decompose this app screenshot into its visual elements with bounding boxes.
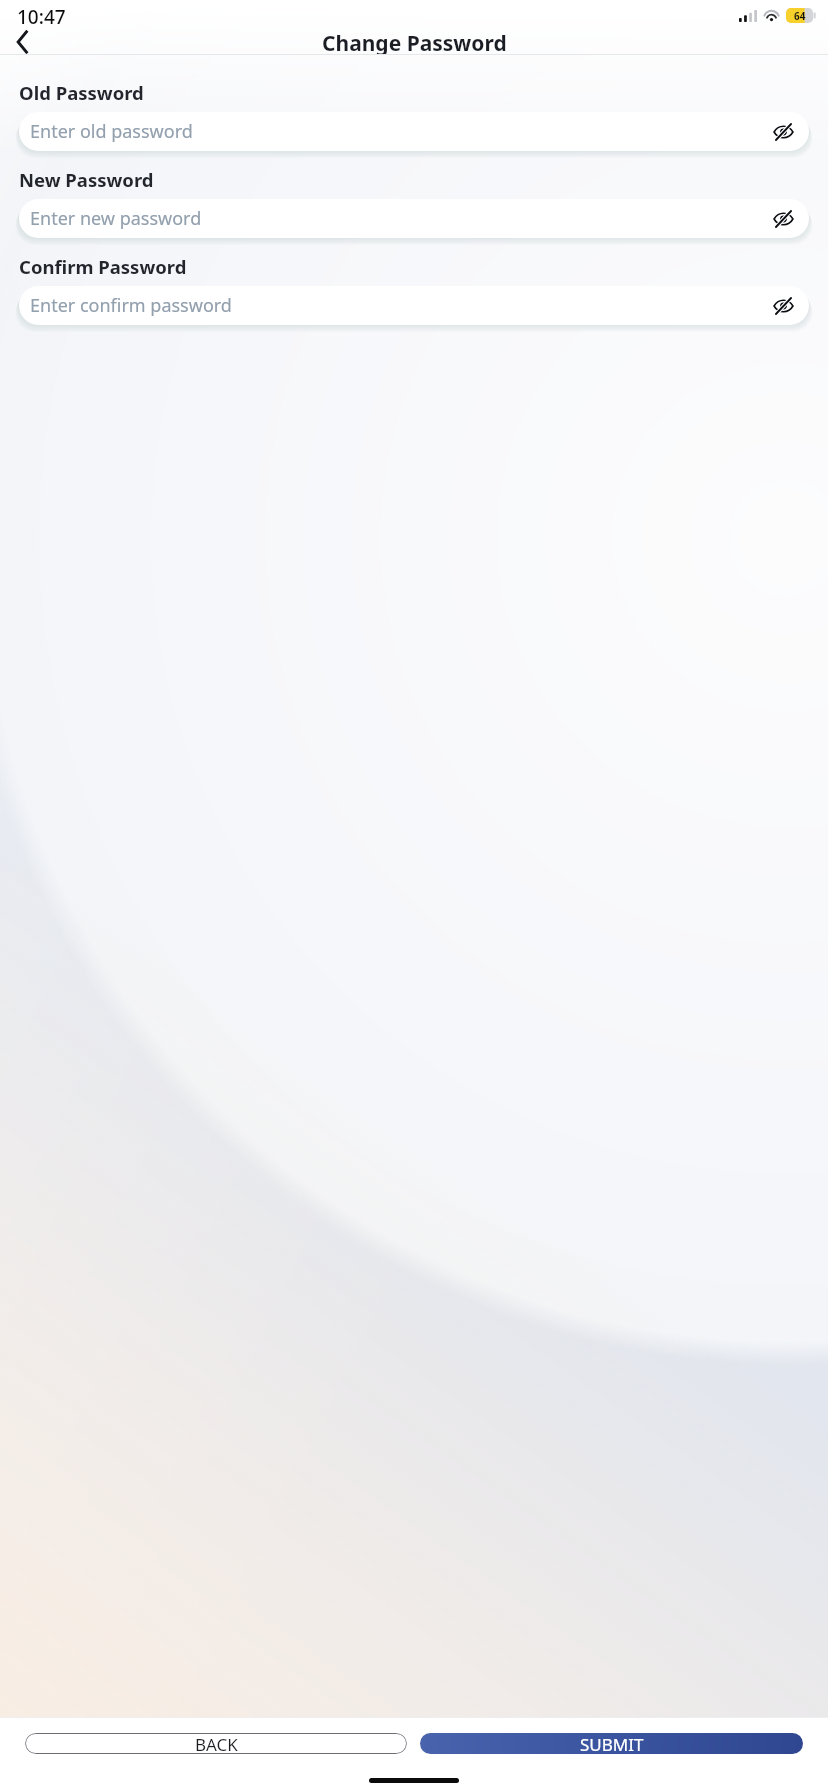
staticText: 10:47 [17, 4, 66, 30]
button[interactable]: Show password [770, 118, 797, 145]
staticText: Confirm Password [19, 254, 187, 279]
button[interactable]: Back [4, 29, 40, 54]
button[interactable]: Show password [770, 205, 797, 232]
button[interactable]: Show password [770, 292, 797, 319]
staticText: 64 [794, 9, 806, 23]
button[interactable]: BACK [25, 1733, 407, 1754]
staticText: BACK [195, 1733, 238, 1754]
button[interactable]: Enter confirm password [19, 286, 809, 325]
staticText: Enter old password [30, 119, 770, 144]
staticText: New Password [19, 167, 154, 192]
staticText: Enter new password [30, 206, 770, 231]
button[interactable]: Enter new password [19, 199, 809, 238]
button[interactable]: SUBMIT [420, 1733, 803, 1754]
staticText: Old Password [19, 80, 144, 105]
staticText: SUBMIT [580, 1733, 644, 1754]
button[interactable]: Enter old password [19, 112, 809, 151]
staticText: Enter confirm password [30, 293, 770, 318]
staticText: Change Password [322, 29, 507, 54]
